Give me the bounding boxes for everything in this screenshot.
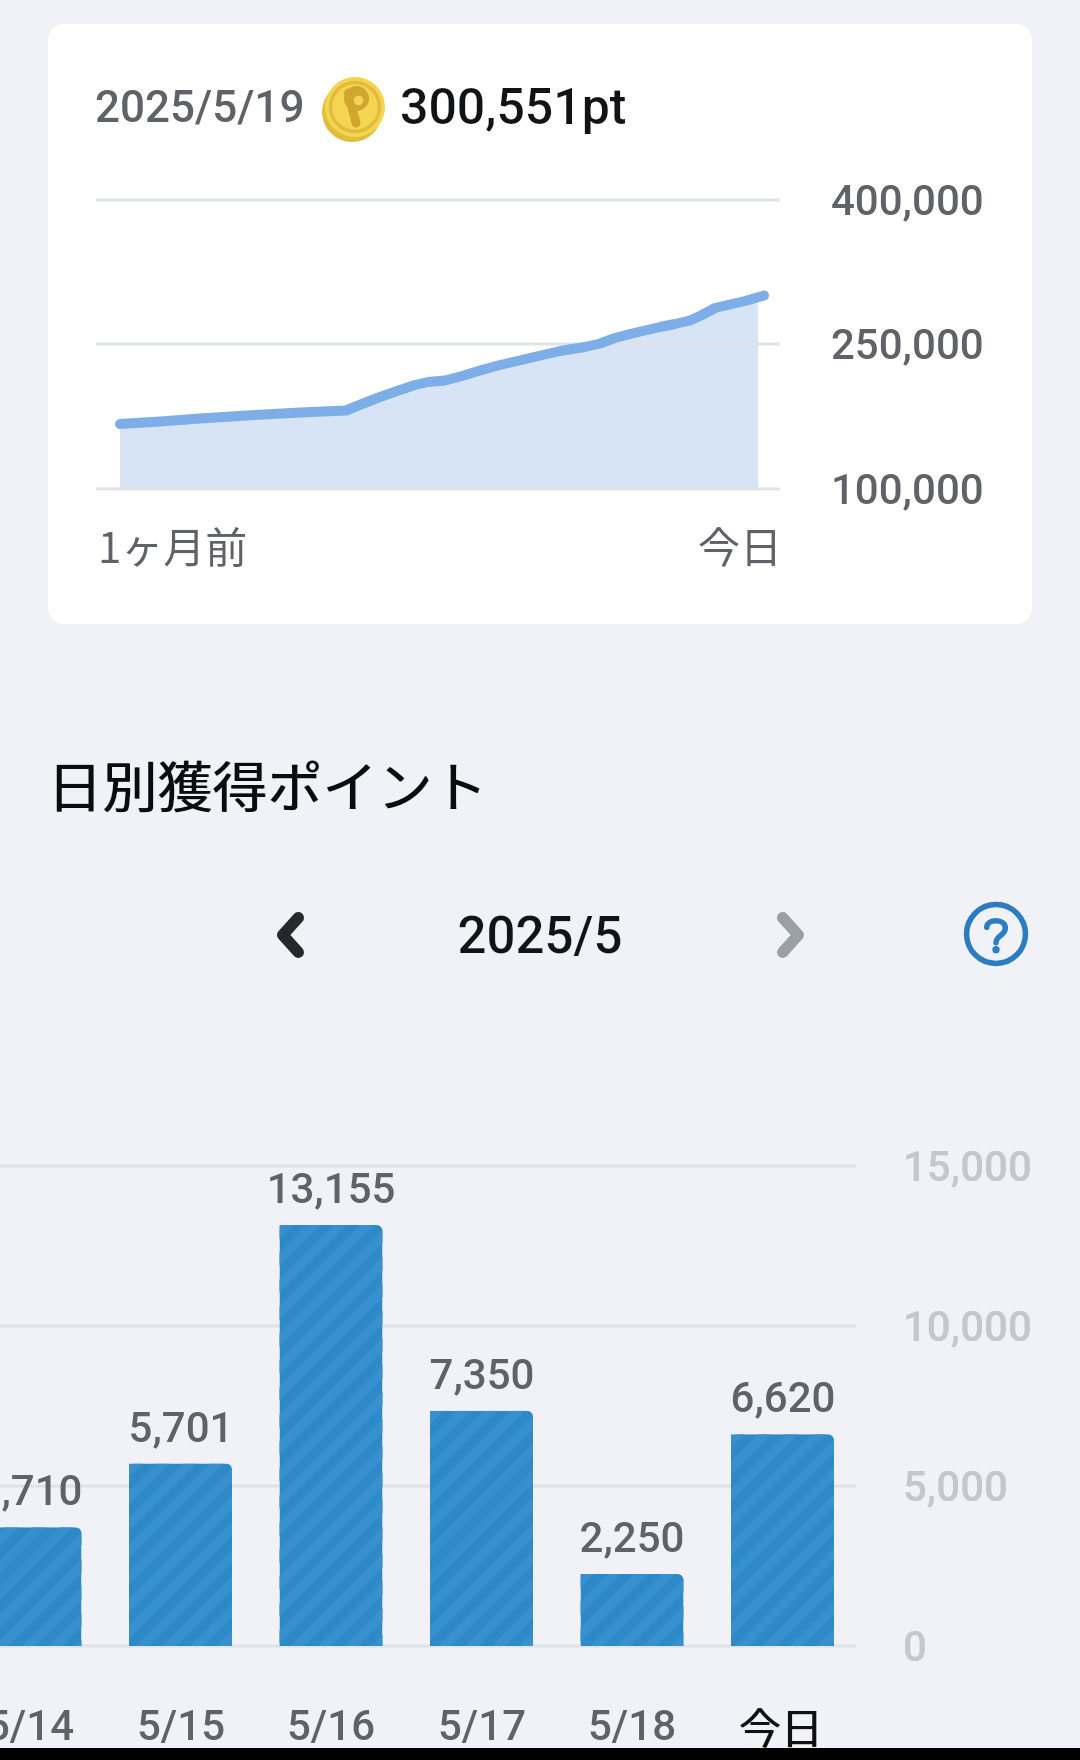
staticText: 7,350 (332, 1350, 632, 1399)
staticText: 5/18 (588, 1701, 676, 1750)
staticText: 5/17 (438, 1701, 526, 1750)
button[interactable]: 前の月 (245, 890, 335, 980)
button[interactable]: 5/17 (407, 1664, 557, 1748)
staticText: 2025/5 (390, 906, 690, 966)
staticText: 3,710 (0, 1466, 180, 1515)
staticText: 100,000 (831, 465, 984, 514)
staticText: 1ヶ月前 (98, 514, 248, 575)
button[interactable]: ヘルプ (951, 889, 1041, 979)
staticText: 2025/5/19 (95, 81, 305, 133)
button[interactable]: 2025/5/19 (48, 24, 1032, 624)
staticText: 0 (903, 1622, 927, 1671)
staticText: 日別獲得ポイント (48, 743, 489, 823)
staticText: 5,000 (903, 1462, 1008, 1511)
staticText: 10,000 (903, 1302, 1032, 1351)
staticText: 5/14 (0, 1701, 74, 1750)
button[interactable]: 5/18 (557, 1664, 707, 1748)
button[interactable]: 次の月 (745, 890, 835, 980)
staticText: 300,551pt (400, 78, 627, 137)
staticText: 400,000 (831, 176, 984, 225)
staticText: 15,000 (903, 1142, 1032, 1191)
staticText: 6,620 (633, 1373, 933, 1422)
staticText: 250,000 (831, 320, 984, 369)
staticText: 5/15 (137, 1701, 225, 1750)
staticText: 13,155 (181, 1164, 481, 1213)
staticText: 今日 (738, 1695, 823, 1756)
button[interactable]: 5/16 (256, 1664, 406, 1748)
staticText: 今日 (698, 514, 783, 575)
staticText: 2,250 (482, 1513, 782, 1562)
staticText: 5/16 (287, 1701, 375, 1750)
staticText: 日別獲得ポイント (47, 743, 488, 823)
button[interactable]: 今日 (708, 1664, 858, 1748)
button[interactable]: 5/15 (106, 1664, 256, 1748)
staticText: 5,701 (31, 1403, 331, 1452)
button[interactable]: 5/14 (0, 1664, 105, 1748)
staticText: 今日 (739, 1695, 824, 1756)
